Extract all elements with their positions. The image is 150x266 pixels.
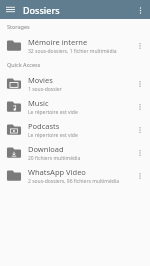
staticText: WhatsApp Video [28, 167, 86, 177]
staticText: Storages [7, 23, 30, 30]
button[interactable]: More options for Movies [133, 77, 147, 91]
staticText: Download [28, 144, 64, 154]
staticText: 20 fichiers multimédia [28, 155, 81, 162]
button[interactable]: More options for Mémoire interne [133, 39, 147, 53]
button[interactable]: More options for WhatsApp Video [133, 169, 147, 183]
button[interactable]: Podcasts [0, 118, 150, 141]
staticText: Quick Access [7, 61, 41, 68]
button[interactable]: More options [133, 3, 147, 17]
staticText: Dossiers [23, 4, 60, 16]
staticText: 1 sous-dossier [28, 86, 62, 93]
staticText: 32 sous-dossiers, 1 fichier multimédia [28, 48, 117, 55]
staticText: Music [28, 98, 49, 108]
staticText: Le répertoire est vide [28, 132, 78, 139]
button[interactable]: Mémoire interne [0, 34, 150, 57]
button[interactable]: Music [0, 95, 150, 118]
button[interactable]: Open navigation menu [3, 2, 18, 17]
button[interactable]: WhatsApp Video [0, 164, 150, 187]
staticText: Movies [28, 75, 53, 85]
button[interactable]: Movies [0, 72, 150, 95]
staticText: Le répertoire est vide [28, 109, 78, 116]
button[interactable]: More options for Download [133, 146, 147, 160]
button[interactable]: Download [0, 141, 150, 164]
staticText: 2 sous-dossiers, 96 fichiers multimédia [28, 178, 119, 185]
button[interactable]: More options for Music [133, 100, 147, 114]
staticText: Mémoire interne [28, 37, 88, 47]
button[interactable]: More options for Podcasts [133, 123, 147, 137]
staticText: Podcasts [28, 121, 60, 131]
